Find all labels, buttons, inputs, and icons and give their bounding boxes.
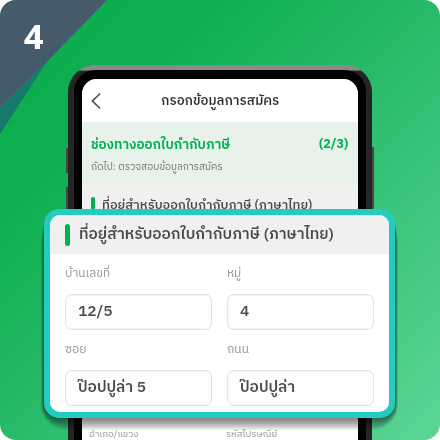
button[interactable]: 4 [227,294,374,330]
staticText: ที่อยู่สำหรับออกใบกำกับภาษี (ภาษาไทย) [102,195,313,216]
staticText: 12/5 [78,299,113,325]
staticText: ป๊อปปูล่า [240,375,296,401]
staticText: ถัดไป: ตรวจสอบข้อมูลการสมัคร [91,159,223,176]
staticText: (2/3) [319,134,349,155]
staticText: หมู่ [227,264,242,284]
staticText: กรอกข้อมูลการสมัคร [161,90,280,112]
button[interactable]: Back [84,89,108,113]
staticText: รหัสไปรษณีย์ [226,426,351,440]
staticText: 4 [24,13,44,59]
button[interactable]: ป๊อปปูล่า [227,370,374,406]
button[interactable]: 12/5 [65,294,212,330]
staticText: บ้านเลขที่ [65,264,111,284]
staticText: 4 [240,299,250,325]
staticText: อำเภอ/แขวง [89,426,226,440]
staticText: ซอย [65,340,87,360]
button[interactable]: ป๊อปปูล่า 5 [65,370,212,406]
staticText: ที่อยู่สำหรับออกใบกำกับภาษี (ภาษาไทย) [79,222,334,248]
staticText: ช่องทางออกใบกำกับภาษี [91,134,319,156]
staticText: ถนน [227,340,249,360]
staticText: ป๊อปปูล่า 5 [78,375,146,401]
